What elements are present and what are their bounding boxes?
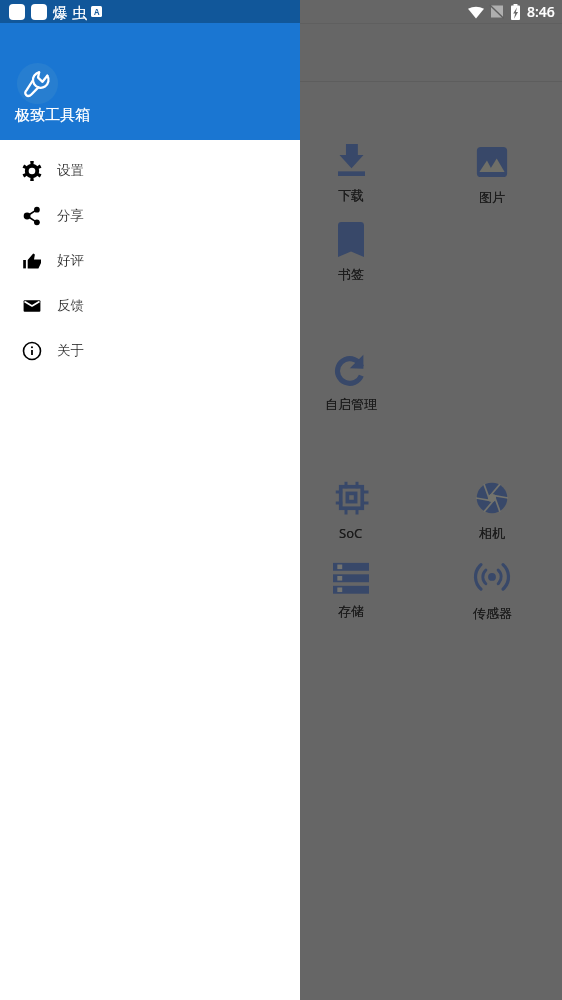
button[interactable]: SoC <box>306 473 396 542</box>
button[interactable]: 图片 <box>447 138 537 205</box>
button[interactable]: 下载 <box>306 136 396 203</box>
button[interactable]: 设置 <box>0 148 300 193</box>
staticText: 传感器 <box>473 605 512 621</box>
staticText: 书签 <box>338 266 364 282</box>
button[interactable]: 传感器 <box>447 554 537 621</box>
staticText: 存储 <box>338 603 364 619</box>
staticText: 传感器 <box>473 605 512 621</box>
staticText: A <box>94 6 100 17</box>
staticText: 书签 <box>338 266 364 282</box>
staticText: 图片 <box>479 189 505 205</box>
staticText: 存储 <box>338 603 364 619</box>
staticText: 下载 <box>338 187 364 203</box>
staticText: SoC <box>339 524 363 542</box>
button[interactable]: 关于 <box>0 328 300 373</box>
staticText: 极致工具箱 <box>15 106 90 125</box>
staticText: 传感器 <box>473 605 512 621</box>
staticText: 反馈 <box>57 297 84 314</box>
staticText: 设置 <box>57 162 84 179</box>
button[interactable]: 分享 <box>0 193 300 238</box>
staticText: 相机 <box>479 525 505 541</box>
button[interactable]: 自启管理 <box>306 345 396 412</box>
staticText: 下载 <box>338 187 364 203</box>
button[interactable]: 好评 <box>0 238 300 283</box>
staticText: 图片 <box>479 189 505 205</box>
staticText: SoC <box>339 524 363 542</box>
button[interactable]: 反馈 <box>0 283 300 328</box>
staticText: 自启管理 <box>325 396 377 412</box>
staticText: 存储 <box>338 603 364 619</box>
staticText: 分享 <box>57 207 84 224</box>
staticText: 下载 <box>338 187 364 203</box>
button[interactable]: 相机 <box>447 474 537 541</box>
button[interactable]: 极致工具箱 <box>0 0 300 140</box>
staticText: 自启管理 <box>325 396 377 412</box>
staticText: 爆 虫 <box>53 2 87 22</box>
button[interactable]: 存储 <box>306 552 396 619</box>
staticText: 关于 <box>57 342 84 359</box>
staticText: 自启管理 <box>325 396 377 412</box>
staticText: 图片 <box>479 189 505 205</box>
button[interactable]: 书签 <box>306 215 396 282</box>
staticText: 好评 <box>57 252 84 269</box>
staticText: 相机 <box>479 525 505 541</box>
other: WiFi <box>468 4 484 20</box>
staticText: 相机 <box>479 525 505 541</box>
staticText: SoC <box>339 524 363 542</box>
staticText: 书签 <box>338 266 364 282</box>
staticText: 8:46 <box>527 2 555 21</box>
